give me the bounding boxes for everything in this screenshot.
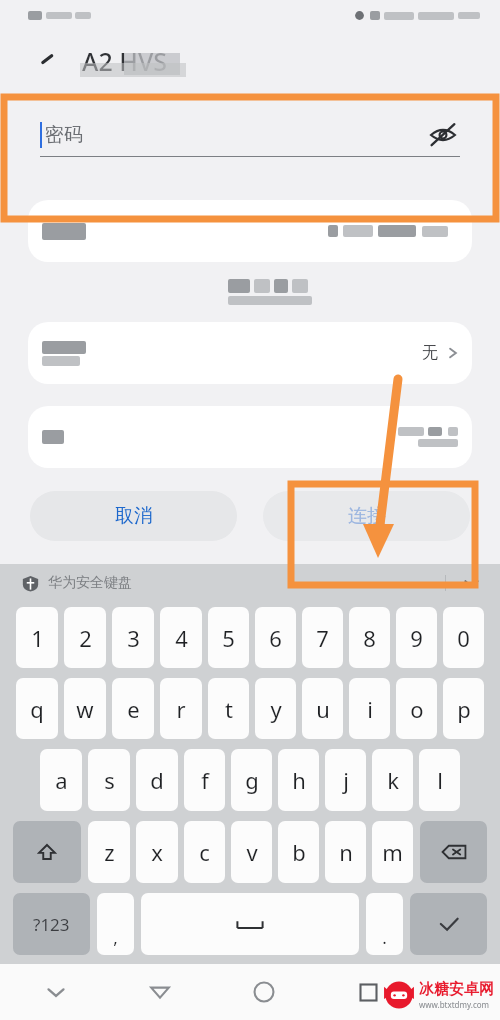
staticText: 7 bbox=[316, 623, 329, 653]
button[interactable]: v bbox=[231, 821, 272, 883]
staticText: v bbox=[246, 837, 258, 867]
button[interactable]: . bbox=[366, 893, 403, 955]
staticText: l bbox=[437, 765, 443, 795]
staticText: t bbox=[225, 694, 233, 724]
button[interactable]: z bbox=[88, 821, 130, 883]
staticText: c bbox=[199, 837, 210, 867]
staticText: o bbox=[410, 694, 424, 724]
button[interactable]: c bbox=[184, 821, 225, 883]
button[interactable]: 6 bbox=[255, 607, 296, 668]
staticText: w bbox=[76, 694, 94, 724]
staticText: y bbox=[270, 694, 282, 724]
staticText: . bbox=[382, 926, 387, 949]
staticText: h bbox=[292, 765, 306, 795]
staticText: u bbox=[316, 694, 330, 724]
staticText: 6 bbox=[269, 623, 282, 653]
staticText: q bbox=[30, 694, 44, 724]
staticText: 1 bbox=[31, 623, 44, 653]
button[interactable]: 4 bbox=[160, 607, 202, 668]
button[interactable]: f bbox=[184, 749, 225, 811]
button[interactable]: m bbox=[372, 821, 413, 883]
staticText: m bbox=[382, 837, 403, 867]
button[interactable]: w bbox=[64, 678, 106, 739]
button[interactable]: Shift bbox=[13, 821, 81, 883]
button[interactable] bbox=[28, 200, 472, 262]
button[interactable]: p bbox=[443, 678, 484, 739]
staticText: 华为安全键盘 bbox=[48, 574, 132, 592]
staticText: s bbox=[104, 765, 115, 795]
button[interactable]: Enter bbox=[410, 893, 487, 955]
button[interactable]: i bbox=[349, 678, 390, 739]
button[interactable]: Backspace bbox=[420, 821, 487, 883]
staticText: f bbox=[201, 765, 209, 795]
staticText: 4 bbox=[175, 623, 188, 653]
staticText: z bbox=[104, 837, 115, 867]
button[interactable]: q bbox=[16, 678, 58, 739]
button[interactable]: Home bbox=[242, 970, 286, 1014]
button[interactable]: r bbox=[160, 678, 202, 739]
button[interactable]: Back bbox=[34, 48, 60, 74]
staticText: 密码 bbox=[45, 123, 83, 147]
button[interactable]: e bbox=[112, 678, 154, 739]
button[interactable]: 连接 bbox=[263, 491, 470, 541]
staticText: 8 bbox=[363, 623, 376, 653]
staticText: 无 bbox=[422, 343, 438, 363]
button[interactable]: b bbox=[278, 821, 319, 883]
button[interactable]: g bbox=[231, 749, 272, 811]
button[interactable]: 1 bbox=[16, 607, 58, 668]
staticText: k bbox=[387, 765, 399, 795]
button[interactable]: k bbox=[372, 749, 413, 811]
staticText: d bbox=[150, 765, 164, 795]
staticText: A2 HVS bbox=[82, 44, 168, 78]
button[interactable]: y bbox=[255, 678, 296, 739]
staticText: 2 bbox=[79, 623, 92, 653]
button[interactable]: Show password bbox=[426, 118, 460, 152]
button[interactable]: 7 bbox=[302, 607, 343, 668]
staticText: 冰糖安卓网 bbox=[419, 980, 494, 999]
button[interactable]: 8 bbox=[349, 607, 390, 668]
button[interactable]: l bbox=[419, 749, 460, 811]
button[interactable]: x bbox=[136, 821, 178, 883]
button[interactable]: Space bbox=[141, 893, 359, 955]
button[interactable]: Back bbox=[138, 970, 182, 1014]
button[interactable]: a bbox=[40, 749, 82, 811]
button[interactable]: h bbox=[278, 749, 319, 811]
staticText: 连接 bbox=[348, 504, 386, 528]
button[interactable] bbox=[28, 406, 472, 468]
button[interactable]: 5 bbox=[208, 607, 249, 668]
button[interactable]: s bbox=[88, 749, 130, 811]
staticText: b bbox=[292, 837, 306, 867]
button[interactable]: j bbox=[325, 749, 366, 811]
staticText: g bbox=[245, 765, 259, 795]
button[interactable]: o bbox=[396, 678, 437, 739]
staticText: 取消 bbox=[115, 504, 153, 528]
button[interactable]: 取消 bbox=[30, 491, 237, 541]
button[interactable]: d bbox=[136, 749, 178, 811]
button[interactable]: Recents bbox=[346, 970, 390, 1014]
button[interactable]: 3 bbox=[112, 607, 154, 668]
staticText: www.btxtdmy.com bbox=[419, 999, 490, 1010]
staticText: n bbox=[339, 837, 353, 867]
button[interactable]: n bbox=[325, 821, 366, 883]
button[interactable]: u bbox=[302, 678, 343, 739]
button[interactable]: Keyboard options bbox=[456, 568, 486, 598]
button[interactable]: 9 bbox=[396, 607, 437, 668]
button[interactable]: 0 bbox=[443, 607, 484, 668]
button[interactable]: t bbox=[208, 678, 249, 739]
staticText: a bbox=[55, 765, 68, 795]
button[interactable]: 2 bbox=[64, 607, 106, 668]
staticText: j bbox=[343, 765, 349, 795]
staticText: ?123 bbox=[33, 913, 70, 936]
staticText: e bbox=[127, 694, 140, 724]
button[interactable]: Hide keyboard bbox=[34, 970, 78, 1014]
staticText: i bbox=[367, 694, 373, 724]
button[interactable]: 无 bbox=[28, 322, 472, 384]
staticText: r bbox=[176, 694, 186, 724]
staticText: p bbox=[457, 694, 471, 724]
staticText: 0 bbox=[457, 623, 470, 653]
button[interactable]: , bbox=[97, 893, 134, 955]
staticText: 5 bbox=[222, 623, 235, 653]
staticText: x bbox=[151, 837, 163, 867]
button[interactable]: ?123 bbox=[13, 893, 90, 955]
staticText: 3 bbox=[127, 623, 140, 653]
